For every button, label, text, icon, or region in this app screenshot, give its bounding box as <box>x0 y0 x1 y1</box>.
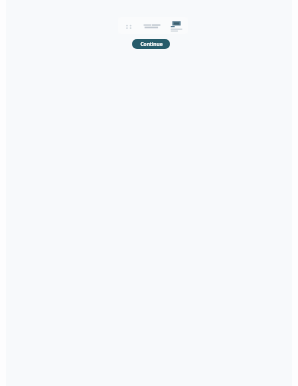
other: Provider logo <box>170 20 183 32</box>
button[interactable]: Provider logo <box>118 17 188 34</box>
staticText: Continue <box>140 41 163 48</box>
button[interactable]: Continue <box>132 39 170 49</box>
